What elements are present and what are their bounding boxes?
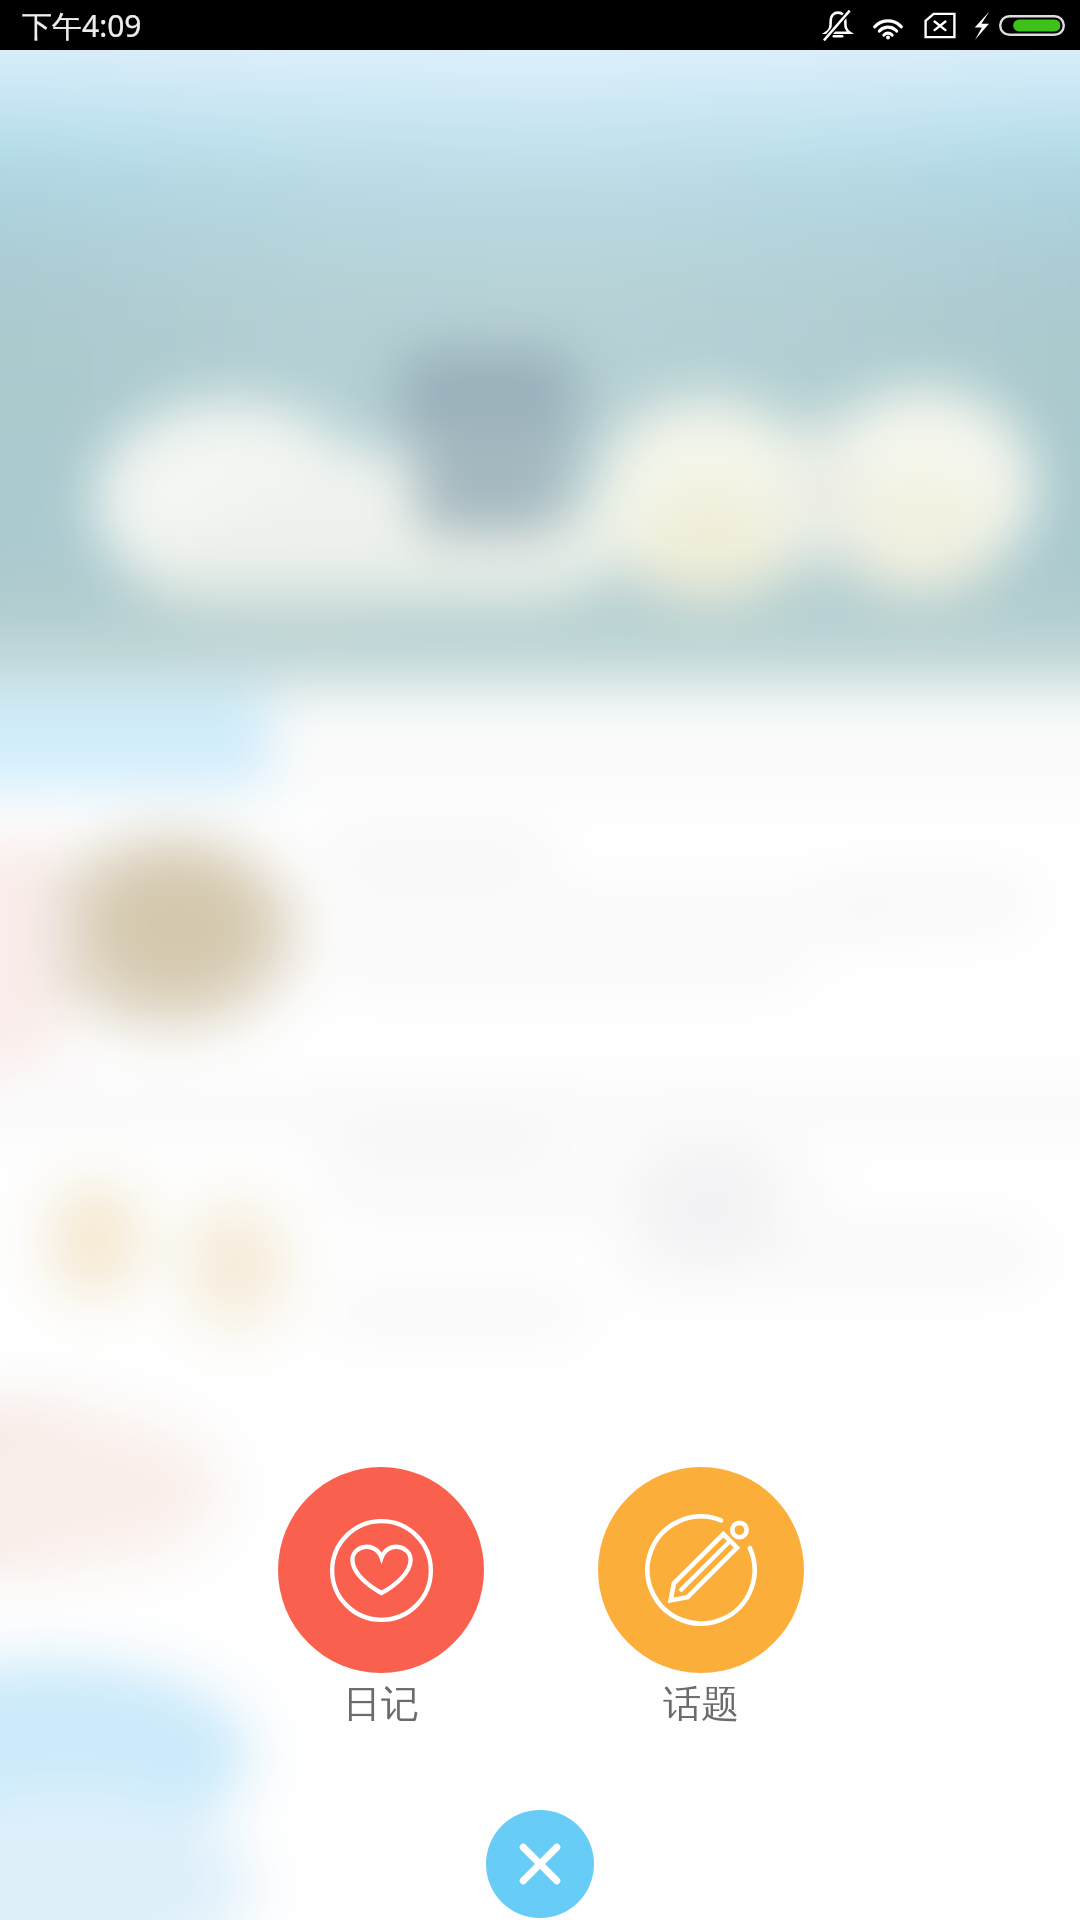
button[interactable]: Close [486,1810,594,1918]
button[interactable]: 日记 Diary [278,1467,484,1728]
staticText: 下午4:09 [22,5,142,46]
staticText: 日记 [343,1680,419,1728]
button[interactable]: 话题 Topic [598,1467,804,1728]
staticText: 话题 [663,1680,739,1728]
